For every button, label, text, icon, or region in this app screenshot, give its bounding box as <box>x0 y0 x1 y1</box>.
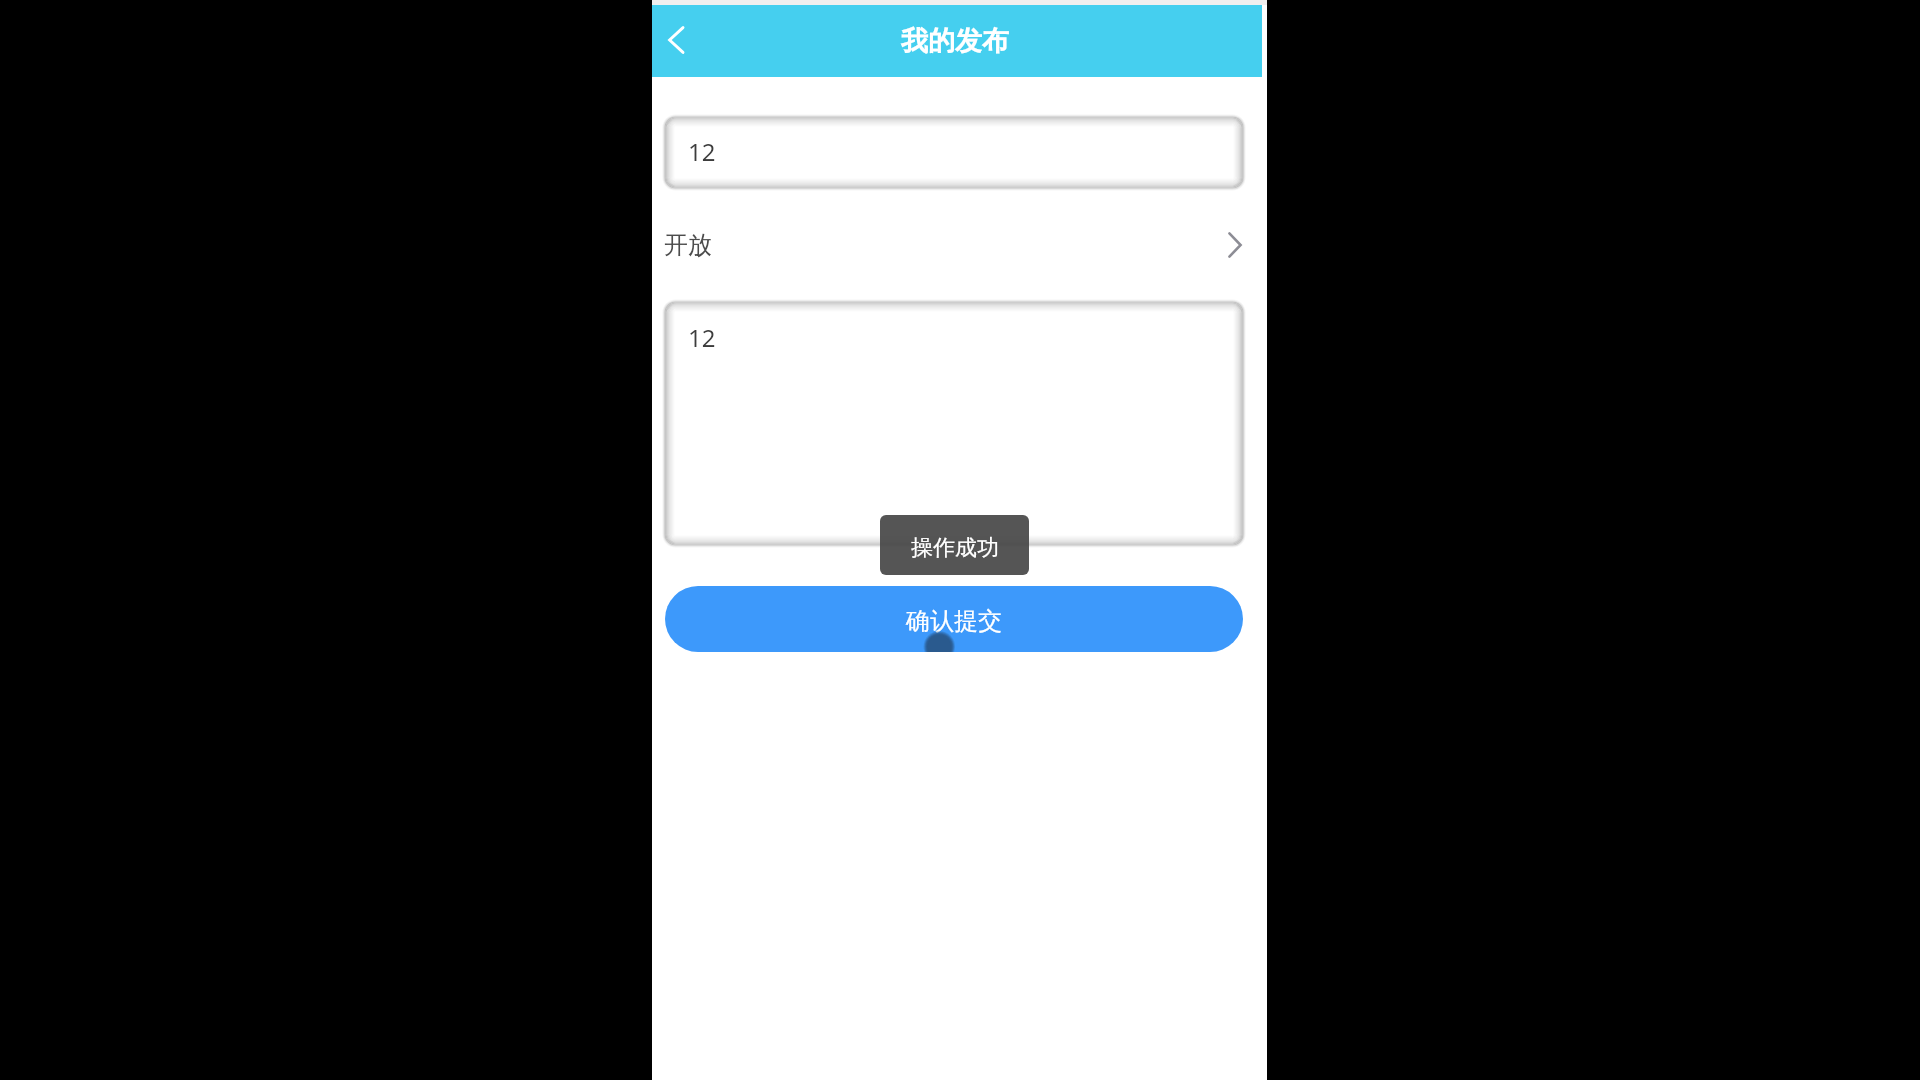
staticText: 确认提交 <box>906 606 1002 636</box>
button[interactable]: 12 <box>665 117 1243 188</box>
staticText: 操作成功 <box>911 534 999 562</box>
staticText: 12 <box>688 135 716 168</box>
staticText: 12 <box>688 321 716 354</box>
button[interactable]: 12 <box>665 302 1243 545</box>
button[interactable]: 开放 <box>652 188 1267 302</box>
button[interactable]: Back <box>653 18 697 62</box>
staticText: 我的发布 <box>901 24 1009 58</box>
button[interactable]: 确认提交 <box>665 586 1243 652</box>
staticText: 开放 <box>664 230 712 260</box>
